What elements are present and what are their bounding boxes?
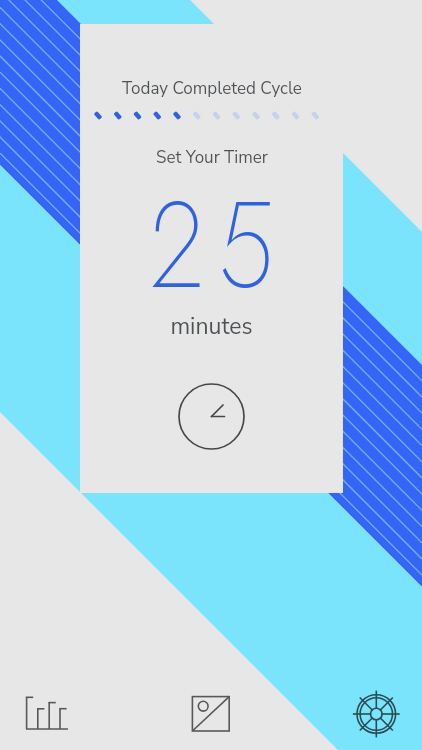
button[interactable]: Start timer	[178, 383, 245, 450]
staticText: minutes	[170, 311, 253, 342]
staticText: Today Completed Cycle	[122, 77, 302, 100]
staticText: 25	[150, 159, 289, 332]
button[interactable]: Gallery	[172, 686, 250, 742]
button[interactable]: Statistics	[6, 686, 90, 742]
staticText: Set Your Timer	[156, 146, 268, 169]
button[interactable]: Compass	[338, 686, 414, 742]
